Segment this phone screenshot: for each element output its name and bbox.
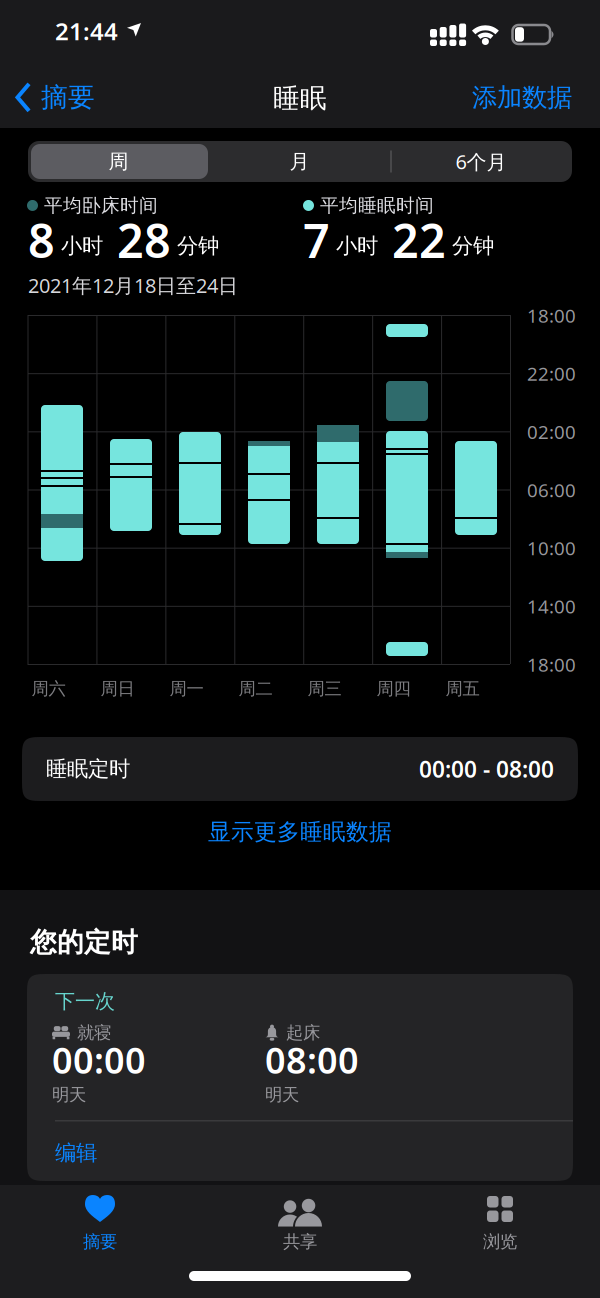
staticText: 起床 bbox=[286, 1022, 320, 1043]
staticText: 2021年12月18日至24日 bbox=[28, 272, 238, 299]
button[interactable]: 添加数据 bbox=[472, 82, 572, 113]
staticText: 7 bbox=[303, 209, 330, 271]
staticText: 周一 bbox=[169, 678, 203, 699]
staticText: 小时 bbox=[336, 233, 378, 259]
staticText: 周日 bbox=[100, 678, 134, 699]
button[interactable]: 显示更多睡眠数据 bbox=[208, 818, 392, 846]
staticText: 周六 bbox=[31, 678, 65, 699]
button[interactable]: 摘要 bbox=[0, 1185, 200, 1275]
staticText: 分钟 bbox=[452, 233, 494, 259]
staticText: 睡眠定时 bbox=[46, 756, 130, 782]
staticText: 6个月 bbox=[455, 148, 506, 175]
staticText: 10:00 bbox=[527, 536, 576, 560]
staticText: 明天 bbox=[265, 1084, 299, 1105]
staticText: 22 bbox=[392, 209, 446, 271]
staticText: 8 bbox=[28, 209, 55, 271]
staticText: 摘要 bbox=[41, 81, 95, 114]
staticText: 28 bbox=[117, 209, 171, 271]
button[interactable]: 月 bbox=[209, 141, 390, 182]
staticText: 摘要 bbox=[83, 1231, 117, 1252]
button[interactable]: 共享 bbox=[200, 1185, 400, 1275]
staticText: 00:00 - 08:00 bbox=[419, 754, 554, 784]
staticText: 02:00 bbox=[527, 419, 576, 444]
staticText: 月 bbox=[289, 149, 309, 174]
button[interactable]: 摘要 bbox=[16, 81, 95, 114]
staticText: 平均睡眠时间 bbox=[320, 194, 434, 217]
staticText: 您的定时 bbox=[30, 926, 138, 959]
staticText: 18:00 bbox=[527, 652, 576, 677]
staticText: 14:00 bbox=[527, 594, 576, 619]
staticText: 22:00 bbox=[527, 361, 576, 386]
button[interactable]: 6个月 bbox=[390, 141, 572, 182]
button[interactable]: 编辑 bbox=[55, 1133, 135, 1173]
staticText: 小时 bbox=[61, 233, 103, 259]
staticText: 共享 bbox=[283, 1231, 317, 1252]
staticText: 周四 bbox=[376, 678, 410, 699]
staticText: 周 bbox=[108, 149, 128, 174]
staticText: 浏览 bbox=[483, 1231, 517, 1252]
staticText: 08:00 bbox=[265, 1036, 359, 1084]
staticText: 编辑 bbox=[55, 1140, 97, 1166]
staticText: 18:00 bbox=[527, 303, 576, 328]
button[interactable]: 周 bbox=[28, 141, 209, 182]
staticText: 分钟 bbox=[177, 233, 219, 259]
staticText: 00:00 bbox=[52, 1036, 146, 1084]
staticText: 就寝 bbox=[77, 1022, 111, 1043]
staticText: 周二 bbox=[238, 678, 272, 699]
staticText: 21:44 bbox=[55, 15, 118, 47]
staticText: 下一次 bbox=[55, 989, 115, 1014]
button[interactable]: 睡眠定时 bbox=[22, 737, 578, 801]
staticText: 明天 bbox=[52, 1084, 86, 1105]
staticText: 显示更多睡眠数据 bbox=[208, 818, 392, 846]
staticText: 睡眠 bbox=[273, 82, 327, 115]
staticText: 周五 bbox=[445, 678, 479, 699]
staticText: 添加数据 bbox=[472, 82, 572, 113]
staticText: 06:00 bbox=[527, 477, 576, 502]
staticText: 周三 bbox=[307, 678, 341, 699]
staticText: 平均卧床时间 bbox=[44, 194, 158, 217]
button[interactable]: 浏览 bbox=[400, 1185, 600, 1275]
